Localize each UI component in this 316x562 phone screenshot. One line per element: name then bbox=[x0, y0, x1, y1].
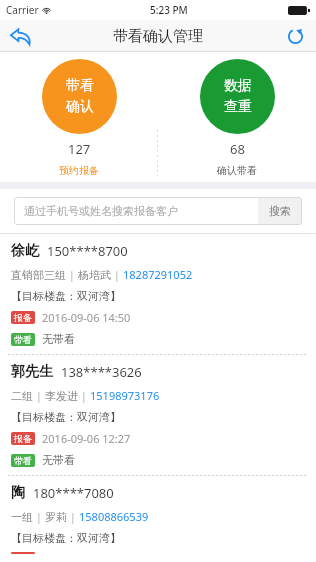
staticText: 【目标楼盘：双河湾】 bbox=[11, 531, 121, 545]
staticText: | bbox=[66, 267, 78, 282]
button[interactable]: Back bbox=[2, 20, 38, 52]
staticText: 无带看 bbox=[42, 453, 75, 467]
staticText: | bbox=[67, 509, 79, 524]
staticText: 杨培武 bbox=[78, 268, 111, 282]
staticText: 无带看 bbox=[42, 332, 75, 346]
staticText: 罗莉 bbox=[45, 510, 67, 524]
staticText: 15808866539 bbox=[79, 509, 149, 524]
staticText: 报备 bbox=[14, 312, 32, 323]
button[interactable]: 通过手机号或姓名搜索报备客户 bbox=[14, 197, 302, 225]
staticText: 预约报备 bbox=[59, 164, 99, 177]
staticText: 陶 bbox=[11, 484, 25, 502]
staticText: 数据 bbox=[224, 77, 252, 95]
staticText: 2016-09-06 14:50 bbox=[42, 310, 131, 325]
staticText: 5:23 PM bbox=[150, 3, 188, 17]
staticText: | bbox=[78, 388, 90, 403]
staticText: 通过手机号或姓名搜索报备客户 bbox=[24, 204, 258, 218]
button[interactable]: 搜索 bbox=[258, 197, 302, 225]
staticText: 确认 bbox=[66, 98, 94, 116]
staticText: 150****8700 bbox=[47, 242, 128, 260]
staticText: 二组 bbox=[11, 389, 33, 403]
button[interactable]: 带看 bbox=[42, 59, 117, 134]
button[interactable]: 陶 bbox=[0, 476, 316, 562]
staticText: | bbox=[111, 267, 123, 282]
button[interactable]: 郭先生 bbox=[0, 355, 316, 475]
staticText: | bbox=[33, 509, 45, 524]
staticText: 带看确认管理 bbox=[113, 27, 203, 46]
staticText: 180****7080 bbox=[33, 484, 114, 502]
button[interactable]: Refresh bbox=[278, 20, 312, 52]
staticText: 68 bbox=[230, 140, 245, 158]
staticText: 直销部三组 bbox=[11, 268, 66, 282]
staticText: 李发进 bbox=[45, 389, 78, 403]
button[interactable]: 数据 bbox=[200, 59, 275, 134]
staticText: Carrier bbox=[6, 3, 39, 17]
button[interactable]: 徐屹 bbox=[0, 234, 316, 354]
staticText: 报备 bbox=[14, 433, 32, 444]
staticText: 127 bbox=[68, 140, 91, 158]
staticText: 带看 bbox=[66, 77, 94, 95]
staticText: 郭先生 bbox=[11, 363, 53, 381]
staticText: 【目标楼盘：双河湾】 bbox=[11, 289, 121, 303]
staticText: 带看 bbox=[14, 334, 32, 345]
staticText: 15198973176 bbox=[90, 388, 160, 403]
staticText: 138****3626 bbox=[61, 363, 142, 381]
staticText: 徐屹 bbox=[11, 242, 39, 260]
staticText: | bbox=[33, 388, 45, 403]
staticText: 确认带看 bbox=[217, 164, 257, 177]
staticText: 【目标楼盘：双河湾】 bbox=[11, 410, 121, 424]
staticText: 18287291052 bbox=[123, 267, 193, 282]
staticText: 查重 bbox=[224, 98, 252, 116]
staticText: 一组 bbox=[11, 510, 33, 524]
staticText: 2016-09-06 12:27 bbox=[42, 431, 131, 446]
staticText: 带看 bbox=[14, 455, 32, 466]
staticText: 搜索 bbox=[269, 204, 291, 218]
